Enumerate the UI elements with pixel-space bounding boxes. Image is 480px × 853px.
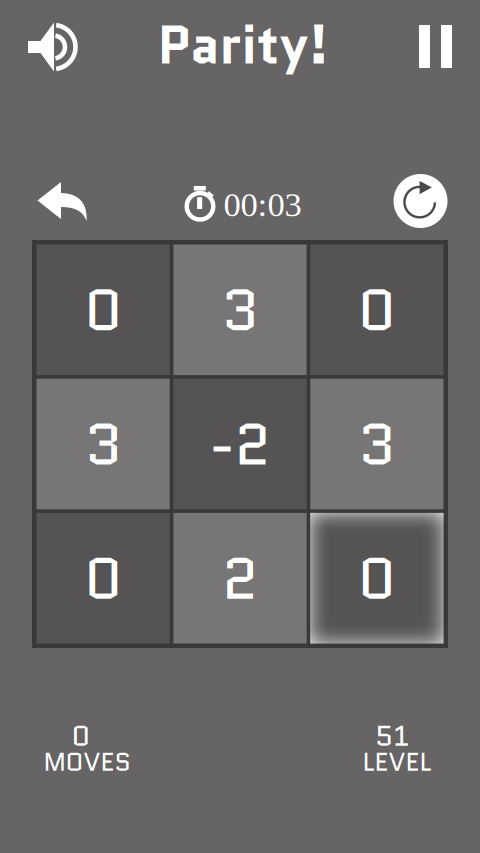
button[interactable]: Pause (419, 25, 452, 68)
button[interactable]: Restart (393, 174, 447, 228)
button[interactable]: 3 (173, 244, 307, 375)
staticText: -2 (209, 403, 270, 485)
button[interactable]: Undo (37, 181, 87, 221)
button[interactable]: 0 (310, 513, 443, 643)
button[interactable]: 3 (36, 379, 170, 509)
button[interactable]: 3 (310, 379, 443, 509)
staticText: 0 (84, 538, 122, 620)
staticText: 3 (85, 403, 122, 485)
staticText: 0 (358, 269, 396, 351)
button[interactable]: -2 (173, 379, 307, 509)
staticText: 0 (358, 538, 396, 620)
button[interactable]: 0 (36, 244, 170, 375)
staticText: 00:03 (223, 185, 301, 224)
staticText: 0 (71, 716, 90, 756)
staticText: 0 (84, 269, 122, 351)
staticText: 3 (221, 269, 258, 351)
staticText: 2 (222, 538, 258, 620)
staticText: Parity! (157, 7, 328, 83)
staticText: LEVEL (362, 744, 431, 780)
staticText: 51 (375, 716, 409, 756)
button[interactable]: 2 (173, 513, 307, 643)
staticText: MOVES (43, 744, 130, 780)
staticText: 3 (358, 403, 395, 485)
button[interactable]: 0 (310, 244, 443, 375)
button[interactable]: 0 (36, 513, 170, 643)
button[interactable]: Sound (27, 22, 77, 72)
